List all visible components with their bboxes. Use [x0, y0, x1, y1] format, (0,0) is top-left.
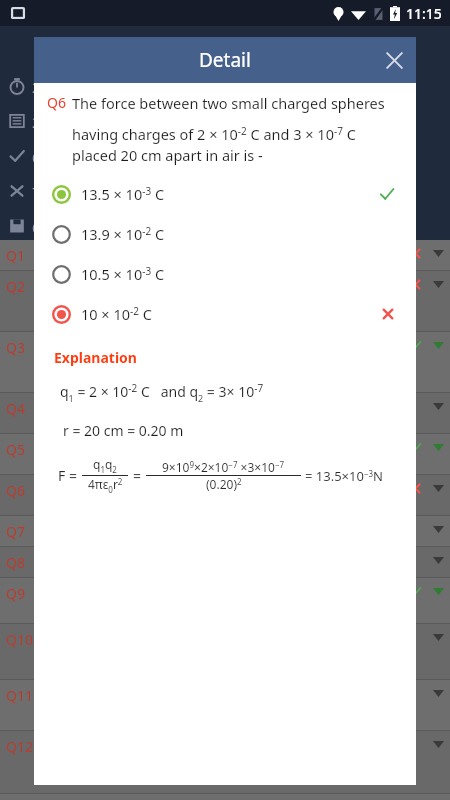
- staticText: q1 = 2 × 10-2 C and q2 = 3× 10-7: [60, 381, 264, 404]
- staticText: (0.20)2: [206, 476, 242, 492]
- staticText: Q4: [6, 399, 25, 418]
- staticText: Explanation: [54, 348, 137, 367]
- staticText: Q8: [6, 553, 25, 572]
- button[interactable]: Q8: [0, 547, 450, 577]
- staticText: Q2: [6, 277, 25, 296]
- staticText: Q6: [47, 93, 66, 112]
- staticText: q1q2: [93, 456, 117, 475]
- button[interactable]: Q3: [0, 332, 450, 392]
- staticText: [31, 399, 404, 417]
- button[interactable]: Q7: [0, 516, 450, 546]
- button[interactable]: Close: [372, 38, 416, 82]
- staticText: r = 20 cm = 0.20 m: [63, 421, 184, 440]
- button[interactable]: 10 × 10-2 C: [34, 294, 416, 334]
- button[interactable]: Q1: [0, 240, 450, 270]
- button[interactable]: Q6: [0, 475, 450, 515]
- staticText: Q12: [6, 737, 33, 756]
- button[interactable]: Q4: [0, 393, 450, 433]
- staticText: 10 × 10-2 C: [81, 304, 152, 324]
- staticText: =: [133, 466, 142, 485]
- staticText: Q3: [6, 338, 25, 357]
- staticText: 7: [32, 183, 41, 202]
- staticText: 20: [32, 78, 49, 97]
- button[interactable]: Q2: [0, 271, 450, 331]
- staticText: [31, 440, 404, 458]
- staticText: Q11: [6, 686, 33, 705]
- staticText: 6: [32, 218, 41, 237]
- button[interactable]: Q10: [0, 624, 450, 679]
- staticText: 4πε0r2: [88, 476, 123, 495]
- staticText: Q5: [6, 440, 25, 459]
- staticText: 6: [32, 148, 41, 167]
- button[interactable]: Q9: [0, 578, 450, 623]
- staticText: [31, 481, 404, 499]
- staticText: [31, 584, 404, 602]
- staticText: Detail: [199, 47, 251, 73]
- staticText: Q10: [6, 630, 33, 649]
- staticText: 13.5 × 10-3 C: [81, 184, 165, 204]
- staticText: Q7: [6, 522, 25, 541]
- button[interactable]: Q5: [0, 434, 450, 474]
- staticText: Q1: [6, 246, 25, 265]
- staticText: [31, 246, 404, 264]
- staticText: Q9: [6, 584, 25, 603]
- staticText: The force between two small charged sphe…: [72, 93, 404, 166]
- staticText: [31, 522, 404, 540]
- staticText: [31, 553, 404, 571]
- button[interactable]: 10.5 × 10-3 C: [34, 254, 416, 294]
- button[interactable]: 13.5 × 10-3 C: [34, 174, 416, 214]
- staticText: 13.9 × 10-2 C: [81, 224, 165, 244]
- staticText: [31, 338, 404, 356]
- staticText: Q6: [6, 481, 25, 500]
- button[interactable]: 13.9 × 10-2 C: [34, 214, 416, 254]
- button[interactable]: Q11: [0, 680, 450, 730]
- staticText: 9×109×2×10−7 ×3×10−7: [162, 459, 285, 475]
- staticText: [31, 277, 404, 295]
- staticText: 10.5 × 10-3 C: [81, 264, 165, 284]
- staticText: = 13.5×10−3N: [305, 467, 383, 485]
- staticText: F =: [58, 466, 77, 485]
- button[interactable]: Q12: [0, 731, 450, 793]
- staticText: 11:15: [406, 4, 442, 23]
- staticText: 25: [32, 113, 49, 132]
